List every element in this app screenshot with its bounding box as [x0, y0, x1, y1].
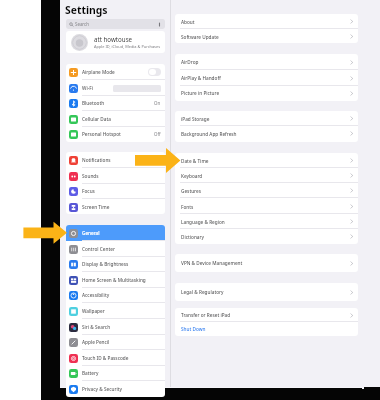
- staticText: Screen Time: [82, 204, 110, 210]
- button[interactable]: Bluetooth: [66, 95, 165, 111]
- staticText: Keyboard: [181, 173, 203, 179]
- button[interactable]: AirDrop: [175, 54, 358, 70]
- staticText: Cellular Data: [82, 116, 111, 122]
- staticText: Software Update: [181, 34, 219, 40]
- button[interactable]: Battery: [66, 365, 165, 381]
- staticText: Personal Hotspot: [82, 131, 121, 137]
- staticText: Transfer or Reset iPad: [181, 312, 231, 318]
- staticText: Fonts: [181, 204, 194, 210]
- button[interactable]: AirPlay & Handoff: [175, 70, 358, 86]
- button[interactable]: Focus: [66, 183, 165, 199]
- staticText: Touch ID & Passcode: [82, 355, 129, 361]
- button[interactable]: Background App Refresh: [175, 126, 358, 141]
- staticText: Gestures: [181, 188, 201, 194]
- button[interactable]: About: [175, 14, 358, 29]
- button[interactable]: Control Center: [66, 241, 165, 257]
- staticText: AirPlay & Handoff: [181, 75, 221, 81]
- button[interactable]: Shut Down: [175, 322, 358, 336]
- staticText: About: [181, 19, 195, 25]
- staticText: Battery: [82, 370, 99, 376]
- button[interactable]: Language & Region: [175, 214, 358, 229]
- button[interactable]: Gestures: [175, 183, 358, 198]
- staticText: Notifications: [82, 157, 111, 163]
- staticText: Search: [75, 21, 89, 27]
- staticText: Wi-Fi: [82, 85, 93, 91]
- button[interactable]: Home Screen & Multitasking: [66, 272, 165, 288]
- staticText: Focus: [82, 188, 95, 194]
- staticText: Language & Region: [181, 219, 225, 225]
- button[interactable]: Dictionary: [175, 229, 358, 244]
- staticText: Home Screen & Multitasking: [82, 277, 146, 283]
- button[interactable]: Date & Time: [175, 153, 358, 168]
- button[interactable]: Display & Brightness: [66, 256, 165, 272]
- button[interactable]: att howtouse: [66, 31, 165, 53]
- staticText: On: [154, 100, 161, 106]
- button[interactable]: Transfer or Reset iPad: [175, 308, 358, 322]
- staticText: Sounds: [82, 173, 99, 179]
- button[interactable]: Wallpaper: [66, 303, 165, 319]
- staticText: Apple ID, iCloud, Media & Purchases: [94, 44, 161, 49]
- staticText: Bluetooth: [82, 100, 105, 106]
- staticText: VPN & Device Management: [181, 260, 243, 266]
- staticText: Shut Down: [181, 326, 206, 332]
- staticText: Legal & Regulatory: [181, 289, 224, 295]
- button[interactable]: Siri & Search: [66, 319, 165, 335]
- staticText: AirDrop: [181, 59, 199, 65]
- button[interactable]: Notifications: [66, 152, 165, 168]
- button[interactable]: General: [66, 225, 165, 241]
- staticText: Background App Refresh: [181, 131, 237, 137]
- staticText: Picture in Picture: [181, 90, 220, 96]
- staticText: Display & Brightness: [82, 261, 129, 267]
- staticText: Airplane Mode: [82, 69, 115, 75]
- button[interactable]: Personal Hotspot: [66, 126, 165, 142]
- button[interactable]: Fonts: [175, 199, 358, 214]
- button[interactable]: Airplane Mode: [66, 64, 165, 80]
- button[interactable]: Search: [66, 19, 165, 29]
- button[interactable]: Apple Pencil: [66, 334, 165, 350]
- button[interactable]: Legal & Regulatory: [175, 283, 358, 301]
- staticText: iPad Storage: [181, 116, 210, 122]
- button[interactable]: Wi-Fi: [66, 80, 165, 96]
- staticText: Dictionary: [181, 234, 204, 240]
- staticText: Apple Pencil: [82, 339, 110, 345]
- button[interactable]: Sounds: [66, 168, 165, 184]
- staticText: Wallpaper: [82, 308, 105, 314]
- button[interactable]: Screen Time: [66, 199, 165, 214]
- staticText: Privacy & Security: [82, 386, 122, 392]
- button[interactable]: Touch ID & Passcode: [66, 350, 165, 366]
- staticText: Control Center: [82, 246, 115, 252]
- button[interactable]: Keyboard: [175, 168, 358, 183]
- button[interactable]: iPad Storage: [175, 111, 358, 126]
- button[interactable]: Picture in Picture: [175, 85, 358, 101]
- button[interactable]: Cellular Data: [66, 111, 165, 127]
- staticText: Off: [154, 131, 161, 137]
- button[interactable]: Software Update: [175, 29, 358, 43]
- staticText: Date & Time: [181, 158, 209, 164]
- staticText: Settings: [65, 3, 108, 17]
- staticText: General: [82, 230, 100, 236]
- staticText: Siri & Search: [82, 324, 111, 330]
- button[interactable]: Privacy & Security: [66, 381, 165, 397]
- staticText: att howtouse: [94, 35, 133, 43]
- button[interactable]: Accessibility: [66, 287, 165, 303]
- button[interactable]: VPN & Device Management: [175, 254, 358, 272]
- staticText: Accessibility: [82, 292, 110, 298]
